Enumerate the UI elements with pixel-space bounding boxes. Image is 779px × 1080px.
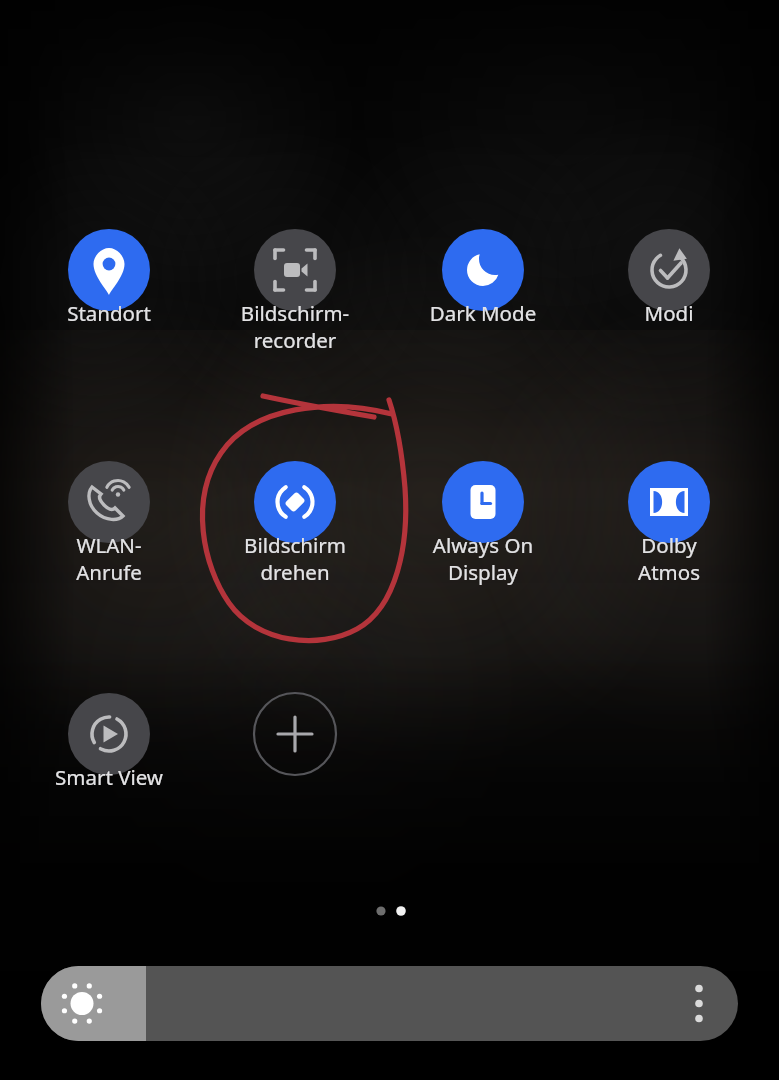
button[interactable]: Dolby Atmos (0, 0, 779, 1080)
button[interactable]: Standort (0, 0, 779, 1080)
button[interactable]: Bildschirm drehen (0, 0, 779, 1080)
button[interactable]: Smart View (0, 0, 779, 1080)
button[interactable]: WLAN-Anrufe (0, 0, 779, 1080)
button[interactable]: Bildschirmrecorder (0, 0, 779, 1080)
button[interactable]: Brightness (0, 0, 779, 1080)
button[interactable]: Always On Display (0, 0, 779, 1080)
button[interactable]: Add tile (0, 0, 779, 1080)
button[interactable]: Modi (0, 0, 779, 1080)
button[interactable]: Dark Mode (0, 0, 779, 1080)
